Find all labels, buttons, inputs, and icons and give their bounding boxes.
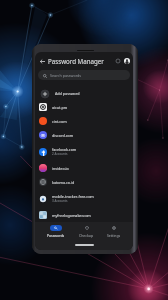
button[interactable]: Checkup <box>78 225 95 238</box>
staticText: Settings <box>107 233 121 238</box>
button[interactable]: discord.com <box>35 128 133 142</box>
button[interactable]: Back <box>38 57 47 66</box>
staticText: myfreelogomaker.com <box>52 213 91 218</box>
staticText: Password Manager <box>48 57 114 65</box>
staticText: mobile-tracker-free.com <box>52 194 94 199</box>
button[interactable]: Passwords <box>46 225 66 238</box>
button[interactable]: aicut.pro <box>35 100 133 114</box>
button[interactable]: Help <box>114 57 122 65</box>
button[interactable]: myfreelogomaker.com <box>35 208 133 222</box>
staticText: Search passwords <box>50 73 82 78</box>
staticText: discord.com <box>52 133 74 138</box>
staticText: 3 Accounts <box>52 199 68 203</box>
button[interactable]: Search passwords <box>38 70 130 80</box>
staticText: 2 Accounts <box>52 152 68 156</box>
button[interactable]: mobile-tracker-free.com <box>35 189 133 208</box>
button[interactable]: invideo.io <box>35 161 133 175</box>
staticText: facebook.com <box>52 147 77 152</box>
button[interactable]: Settings <box>106 225 122 238</box>
staticText: aicut.pro <box>52 105 68 110</box>
staticText: cint.com <box>52 119 67 124</box>
staticText: Add password <box>55 91 80 96</box>
staticText: katoma.co.id <box>52 180 75 185</box>
button[interactable]: Add password <box>35 87 133 100</box>
button[interactable]: Account <box>124 58 130 64</box>
staticText: Passwords <box>47 233 65 238</box>
button[interactable]: facebook.com <box>35 142 133 161</box>
button[interactable]: cint.com <box>35 114 133 128</box>
staticText: Checkup <box>79 233 94 238</box>
button[interactable]: katoma.co.id <box>35 175 133 189</box>
staticText: invideo.io <box>52 166 69 171</box>
